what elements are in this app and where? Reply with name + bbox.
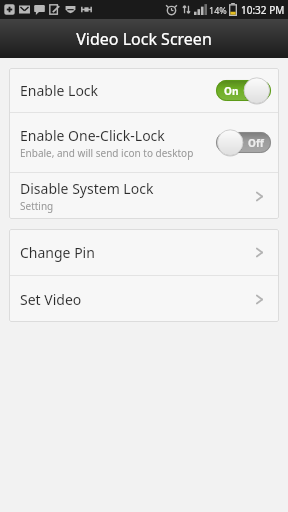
other: Disable System Lock (255, 189, 264, 204)
staticText: Setting (20, 199, 54, 213)
button[interactable]: Enable One-Click-Lock (9, 113, 279, 172)
staticText: Enable Lock (20, 81, 99, 100)
other: Change Pin (255, 245, 264, 260)
other: Set Video (255, 292, 264, 307)
staticText: Enbale, and will send icon to desktop (20, 146, 194, 160)
button[interactable]: Change Pin (9, 229, 279, 275)
staticText: Video Lock Screen (76, 28, 212, 50)
staticText: Set Video (20, 290, 82, 309)
staticText: Change Pin (20, 243, 95, 262)
button[interactable]: Switch on (216, 77, 271, 104)
staticText: 14% (209, 4, 227, 16)
staticText: Enable One-Click-Lock (20, 126, 165, 145)
staticText: Off (248, 136, 264, 150)
button[interactable]: Enable Lock (9, 68, 279, 112)
button[interactable]: Switch off (216, 129, 271, 156)
staticText: 10:32 PM (241, 3, 285, 17)
button[interactable]: Set Video (9, 276, 279, 322)
button[interactable]: Disable System Lock (9, 173, 279, 219)
staticText: On (224, 84, 239, 98)
staticText: Disable System Lock (20, 179, 154, 198)
